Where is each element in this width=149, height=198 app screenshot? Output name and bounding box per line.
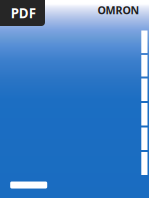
staticText: PDF (11, 4, 36, 22)
button[interactable]: PDF (0, 0, 45, 26)
staticText: OMRON (97, 3, 139, 17)
